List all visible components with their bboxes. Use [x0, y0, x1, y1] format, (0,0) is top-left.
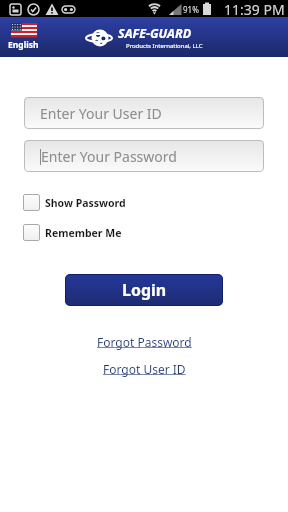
staticText: Enter Your User ID [40, 104, 162, 123]
staticText: Remember Me [45, 226, 122, 240]
staticText: 91% [183, 4, 199, 15]
button[interactable]: English [8, 23, 39, 51]
button[interactable]: Login [65, 274, 223, 306]
staticText: English [8, 39, 39, 51]
button[interactable]: Forgot User ID [103, 361, 186, 377]
staticText: 11:39 PM [224, 0, 285, 17]
staticText: Enter Your Password [41, 147, 177, 166]
button[interactable]: Remember Me [23, 224, 122, 241]
button[interactable]: Forgot Password [97, 334, 192, 350]
button[interactable]: Enter Your User ID [24, 97, 264, 129]
button[interactable]: Enter Your Password [24, 140, 264, 172]
staticText: Login [122, 279, 167, 301]
staticText: SAFE-GUARD [118, 25, 192, 42]
button[interactable]: Show Password [23, 194, 126, 211]
staticText: Show Password [45, 196, 126, 210]
staticText: Products International, LLC [126, 42, 203, 50]
